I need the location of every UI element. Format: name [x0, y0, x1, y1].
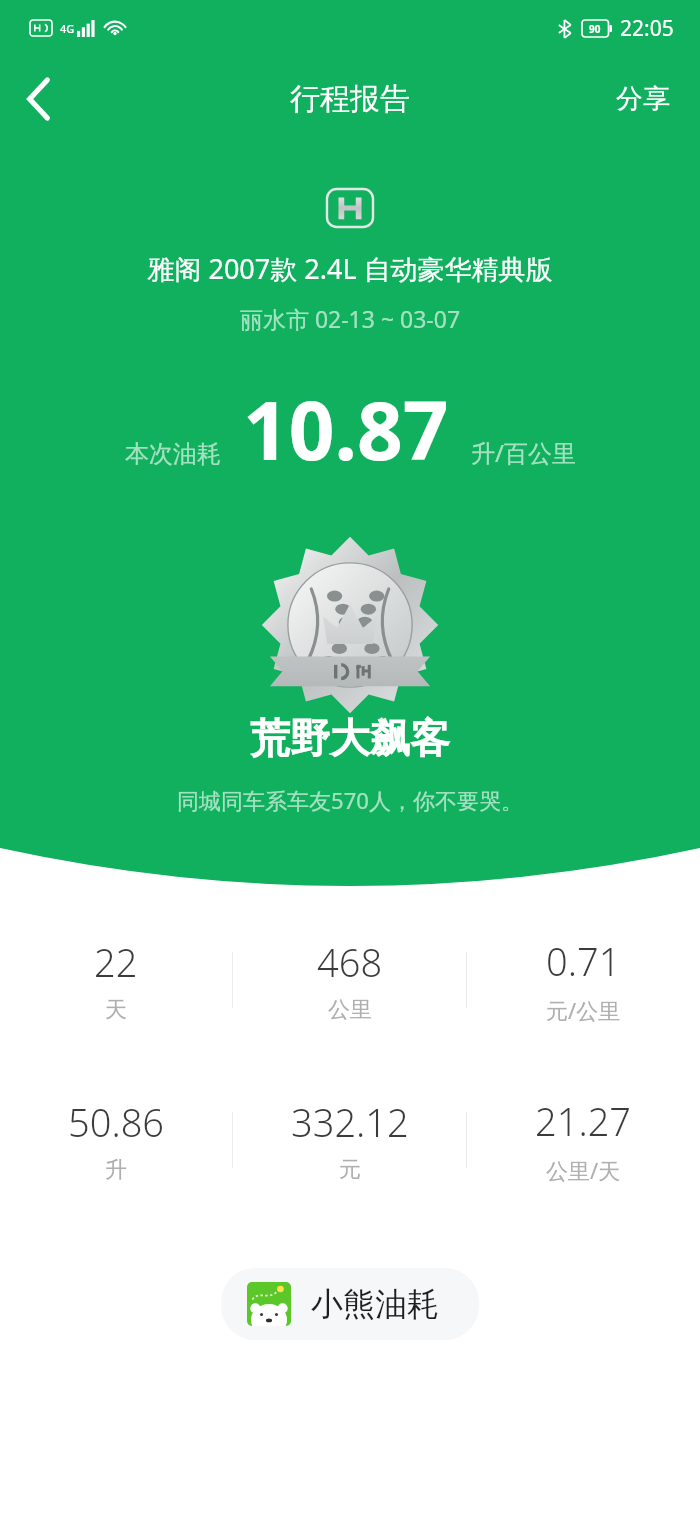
staticText: 332.12 [291, 1096, 409, 1148]
staticText: 小熊油耗 [311, 1284, 439, 1324]
staticText: 468 [317, 936, 383, 988]
staticText: 元 [339, 1156, 361, 1184]
staticText: 荒野大飙客 [0, 713, 700, 763]
staticText: 0.71 [546, 935, 621, 987]
button[interactable]: 332.12 [233, 1092, 466, 1188]
staticText: 本次油耗 [125, 439, 221, 469]
button[interactable]: 22 [0, 932, 232, 1028]
staticText: 50.86 [68, 1096, 165, 1148]
staticText: 公里 [328, 996, 372, 1024]
staticText: 21.27 [535, 1095, 632, 1147]
staticText: 升 [105, 1156, 127, 1184]
button[interactable]: 分享 [586, 64, 700, 134]
staticText: 行程报告 [290, 80, 410, 118]
staticText: 公里/天 [546, 1155, 621, 1185]
button[interactable]: 0.71 [467, 931, 700, 1029]
staticText: 分享 [616, 82, 670, 116]
staticText: 4G [60, 21, 75, 36]
staticText: 同城同车系车友570人，你不要哭。 [0, 785, 700, 815]
staticText: 雅阁 2007款 2.4L 自动豪华精典版 [0, 250, 700, 287]
button[interactable]: 小熊油耗 [221, 1268, 479, 1340]
button[interactable]: Back [0, 60, 78, 138]
staticText: 22:05 [620, 14, 674, 43]
staticText: 丽水市 02-13 ~ 03-07 [0, 303, 700, 334]
staticText: 22 [94, 936, 138, 988]
staticText: 90 [589, 22, 601, 36]
staticText: 10.87 [243, 374, 449, 483]
button[interactable]: 50.86 [0, 1092, 232, 1188]
button[interactable]: 468 [233, 932, 466, 1028]
button[interactable]: 21.27 [467, 1091, 700, 1189]
staticText: 升/百公里 [471, 436, 576, 469]
staticText: 元/公里 [546, 995, 621, 1025]
staticText: 天 [105, 996, 127, 1024]
